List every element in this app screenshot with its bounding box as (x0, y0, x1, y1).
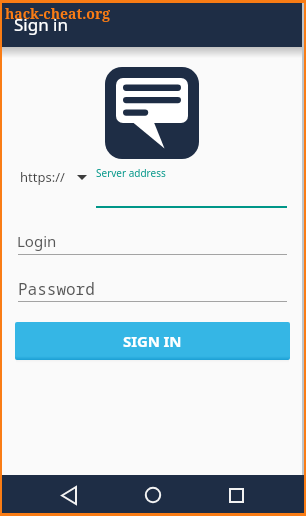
button[interactable]: SIGN IN (15, 322, 290, 360)
button[interactable]: https:// (16, 164, 92, 190)
button[interactable]: Back (58, 484, 80, 506)
staticText: Password (18, 278, 95, 300)
button[interactable]: Recents (225, 484, 247, 506)
staticText: Sign in (14, 13, 68, 36)
button[interactable]: Home (142, 484, 164, 506)
staticText: hack-cheat.org (5, 4, 111, 23)
staticText: Login (17, 231, 57, 251)
staticText: SIGN IN (123, 331, 182, 351)
staticText: Server address (96, 166, 166, 180)
staticText: https:// (20, 168, 65, 186)
